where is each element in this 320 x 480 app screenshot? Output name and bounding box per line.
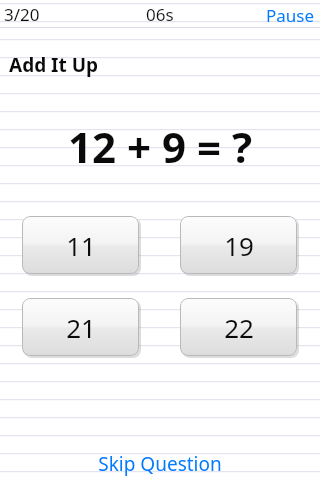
staticText: Skip Question bbox=[98, 451, 222, 477]
staticText: 3/20 bbox=[4, 3, 40, 26]
staticText: 19 bbox=[224, 228, 254, 263]
staticText: Pause bbox=[266, 4, 315, 24]
staticText: 21 bbox=[66, 310, 96, 345]
button[interactable]: Pause bbox=[261, 0, 320, 28]
button[interactable]: 19 bbox=[180, 216, 297, 274]
button[interactable]: 11 bbox=[22, 216, 139, 274]
button[interactable]: Skip Question bbox=[84, 446, 236, 480]
staticText: 06s bbox=[146, 3, 174, 26]
button[interactable]: 21 bbox=[22, 298, 139, 356]
staticText: 11 bbox=[66, 228, 96, 263]
button[interactable]: 22 bbox=[180, 298, 297, 356]
staticText: 22 bbox=[224, 310, 254, 345]
staticText: 12 + 9 = ? bbox=[68, 118, 252, 175]
staticText: Add It Up bbox=[9, 52, 99, 78]
